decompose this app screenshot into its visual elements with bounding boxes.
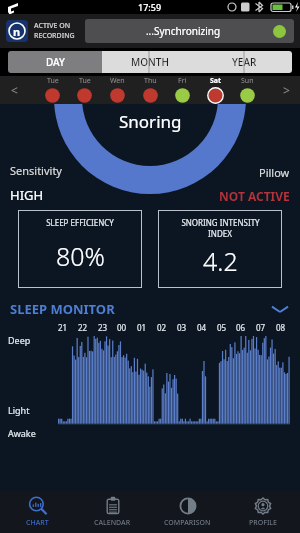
button[interactable]: Tue: [76, 76, 93, 104]
staticText: 03: [177, 322, 187, 333]
staticText: SLEEP EFFICIENCY: [46, 217, 114, 228]
button[interactable]: ...Synchronizing: [85, 19, 294, 43]
staticText: SLEEP MONITOR: [10, 300, 270, 318]
staticText: Light: [8, 404, 30, 416]
button[interactable]: SLEEP EFFICIENCY: [18, 210, 142, 288]
staticText: Tue: [79, 76, 91, 86]
button[interactable]: App logo: [6, 20, 28, 42]
staticText: 05: [217, 322, 227, 333]
staticText: 06: [236, 322, 246, 333]
staticText: RECORDING: [34, 31, 75, 41]
staticText: 01: [137, 322, 147, 333]
other: Collapse: [270, 303, 290, 315]
staticText: CALENDAR: [94, 518, 131, 528]
button[interactable]: CHART: [0, 491, 75, 533]
staticText: 02: [157, 322, 167, 333]
staticText: Pillow: [259, 165, 290, 180]
button[interactable]: Thu: [142, 76, 159, 104]
staticText: HIGH: [10, 186, 44, 204]
staticText: 4.2: [203, 244, 238, 278]
button[interactable]: SLEEP MONITOR: [0, 296, 300, 322]
staticText: 17:59: [138, 1, 162, 13]
button[interactable]: Sun: [239, 76, 256, 104]
button[interactable]: Fri: [174, 76, 191, 104]
staticText: YEAR: [232, 55, 257, 69]
staticText: COMPARISON: [164, 518, 211, 528]
staticText: DAY: [46, 55, 65, 69]
staticText: SNORING INTENSITY: [181, 217, 260, 228]
staticText: Sensitivity: [10, 163, 62, 178]
button[interactable]: Previous week: [0, 76, 28, 104]
button[interactable]: CALENDAR: [75, 491, 150, 533]
staticText: INDEX: [208, 228, 232, 239]
button[interactable]: YEAR: [197, 51, 292, 73]
staticText: NOT ACTIVE: [219, 188, 290, 204]
staticText: 04: [197, 322, 207, 333]
staticText: 23: [98, 322, 108, 333]
button[interactable]: MONTH: [102, 51, 197, 73]
button[interactable]: DAY: [8, 51, 102, 73]
button[interactable]: Tue: [44, 76, 61, 104]
staticText: Deep: [8, 334, 31, 346]
button[interactable]: COMPARISON: [150, 491, 225, 533]
staticText: Awake: [8, 427, 36, 439]
staticText: 22: [78, 322, 88, 333]
staticText: CHART: [26, 518, 49, 528]
staticText: Tue: [47, 76, 59, 86]
button[interactable]: Sat: [207, 76, 224, 104]
staticText: 08: [276, 322, 286, 333]
button[interactable]: SNORING INTENSITY: [158, 210, 282, 288]
staticText: 00: [117, 322, 127, 333]
staticText: Thu: [144, 76, 157, 86]
staticText: 07: [256, 322, 266, 333]
button[interactable]: Wen: [109, 76, 126, 104]
button[interactable]: Next week: [272, 76, 300, 104]
staticText: Wen: [110, 76, 125, 86]
staticText: <: [11, 82, 18, 98]
staticText: Fri: [178, 76, 187, 86]
staticText: ACTIVE ON: [34, 21, 71, 31]
staticText: MONTH: [131, 55, 169, 69]
staticText: PROFILE: [249, 518, 277, 528]
staticText: 80%: [56, 239, 105, 273]
staticText: ...Synchronizing: [93, 24, 273, 38]
staticText: Snoring: [119, 110, 182, 133]
staticText: n: [13, 24, 21, 39]
staticText: Sat: [210, 76, 222, 86]
button[interactable]: PROFILE: [225, 491, 300, 533]
staticText: 21: [58, 322, 68, 333]
staticText: >: [283, 82, 290, 98]
staticText: Sun: [241, 76, 254, 86]
